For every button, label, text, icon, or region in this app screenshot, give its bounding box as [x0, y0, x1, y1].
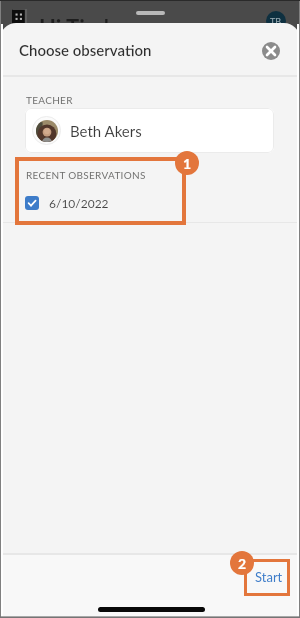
staticText: RECENT OBSERVATIONS: [26, 169, 146, 181]
staticText: Hi Tim!: [39, 14, 110, 40]
staticText: 1: [183, 155, 192, 172]
staticText: Choose observation: [19, 41, 152, 59]
button[interactable]: Start: [249, 563, 289, 591]
staticText: 6/10/2022: [49, 196, 109, 210]
staticText: TEACHER: [26, 94, 73, 106]
button[interactable]: Beth Akers: [25, 108, 274, 153]
staticText: Start: [255, 569, 283, 585]
button[interactable]: 6/10/2022: [25, 192, 300, 214]
staticText: Beth Akers: [70, 122, 142, 140]
staticText: 2: [238, 555, 247, 572]
button[interactable]: Close: [262, 42, 280, 60]
staticText: TB: [270, 16, 282, 27]
